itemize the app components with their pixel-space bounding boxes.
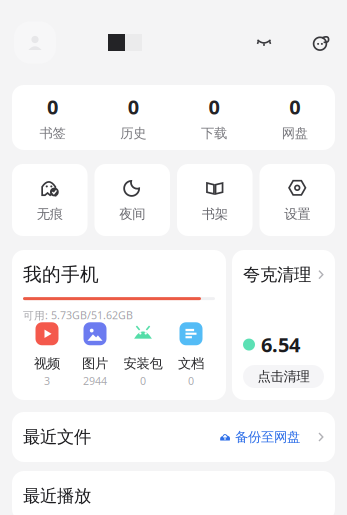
staticText: 备份至网盘 (235, 429, 300, 445)
staticText: 文档 (178, 355, 204, 372)
staticText: 下载 (201, 125, 227, 141)
button[interactable]: 设置 (259, 164, 335, 236)
staticText: 无痕 (37, 206, 63, 222)
button[interactable]: 视频 (23, 322, 71, 388)
button[interactable]: 备份至网盘 (219, 429, 300, 445)
staticText: 设置 (284, 206, 310, 222)
staticText: 我的手机 (23, 263, 99, 286)
staticText: 书架 (202, 206, 228, 222)
button[interactable]: Profile (14, 21, 56, 63)
button[interactable]: 无痕 (12, 164, 87, 236)
button[interactable]: 文档 (167, 322, 215, 388)
staticText: 最近播放 (23, 485, 91, 507)
staticText: 0 (188, 374, 194, 388)
button[interactable]: 0 (254, 85, 335, 150)
staticText: 0 (128, 93, 139, 120)
staticText: 0 (208, 93, 219, 120)
staticText: 网盘 (282, 125, 308, 141)
staticText: 安装包 (123, 355, 162, 372)
button[interactable]: 0 (173, 85, 254, 150)
staticText: 0 (140, 374, 146, 388)
staticText: 历史 (120, 125, 146, 141)
button[interactable]: Incognito mode (253, 31, 275, 53)
staticText: 3 (44, 374, 50, 388)
staticText: 可用: 5.73GB/51.62GB (23, 308, 133, 322)
button[interactable]: 点击清理 (243, 365, 324, 388)
staticText: 6.54 (261, 331, 300, 358)
staticText: 0 (47, 93, 58, 120)
button[interactable]: 0 (93, 85, 174, 150)
staticText: 最近文件 (23, 426, 91, 448)
staticText: 点击清理 (257, 368, 309, 385)
button[interactable]: 0 (12, 85, 93, 150)
staticText: 2944 (83, 374, 107, 388)
staticText: 书签 (39, 125, 65, 141)
button[interactable]: 夜间 (94, 164, 170, 236)
button[interactable]: 书架 (177, 164, 252, 236)
button[interactable]: 安装包 (119, 322, 167, 388)
button[interactable]: Assistant (311, 32, 331, 52)
button[interactable]: 图片 (71, 322, 119, 388)
staticText: 0 (289, 93, 300, 120)
staticText: 图片 (82, 355, 108, 372)
staticText: 视频 (34, 355, 60, 372)
staticText: 夜间 (119, 206, 145, 222)
staticText: 夸克清理 (243, 264, 311, 285)
